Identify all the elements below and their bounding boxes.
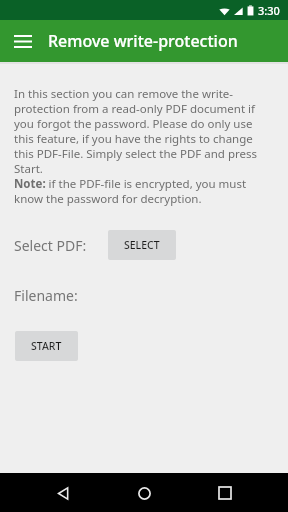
button[interactable]: Recent apps: [208, 476, 242, 510]
button[interactable]: SELECT: [108, 230, 176, 260]
staticText: Remove write-protection: [48, 30, 238, 52]
staticText: START: [31, 339, 62, 353]
staticText: Select PDF:: [14, 236, 87, 255]
staticText: 3:30: [258, 3, 280, 18]
staticText: In this section you can remove the write…: [14, 86, 274, 206]
button[interactable]: Back: [46, 476, 80, 510]
button[interactable]: Home: [127, 476, 161, 510]
button[interactable]: Open navigation menu: [6, 24, 40, 58]
button[interactable]: START: [15, 331, 78, 361]
staticText: SELECT: [124, 238, 160, 252]
staticText: Filename:: [14, 286, 78, 305]
